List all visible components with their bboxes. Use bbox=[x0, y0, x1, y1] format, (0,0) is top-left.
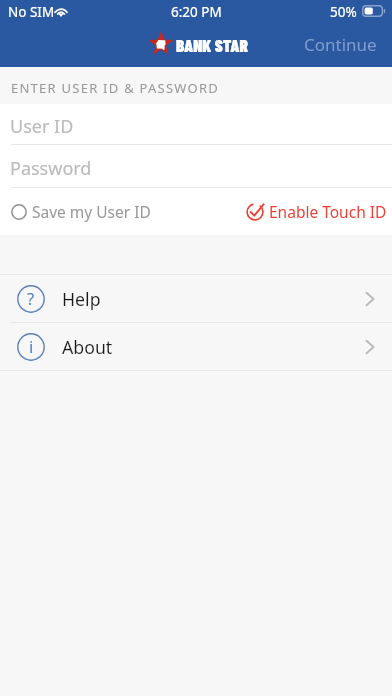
button[interactable]: Enable Touch ID bbox=[236, 193, 392, 230]
other: Open Help bbox=[365, 292, 375, 306]
button[interactable]: i bbox=[0, 323, 392, 370]
button[interactable]: Password bbox=[0, 145, 392, 187]
button[interactable]: User ID bbox=[0, 104, 392, 144]
other: Open About bbox=[365, 340, 375, 354]
staticText: Continue bbox=[304, 33, 377, 56]
staticText: BANK STAR bbox=[176, 35, 248, 56]
staticText: Help bbox=[62, 287, 101, 311]
staticText: i bbox=[29, 335, 34, 357]
staticText: User ID bbox=[10, 114, 74, 139]
staticText: Save my User ID bbox=[32, 201, 151, 222]
staticText: Password bbox=[10, 156, 92, 181]
button[interactable]: ? bbox=[0, 275, 392, 322]
button[interactable]: Save my User ID bbox=[0, 193, 161, 230]
staticText: 50% bbox=[330, 3, 357, 21]
staticText: Enable Touch ID bbox=[269, 201, 387, 222]
staticText: No SIM bbox=[8, 3, 55, 21]
staticText: 6:20 PM bbox=[171, 3, 222, 21]
button[interactable]: Continue bbox=[294, 27, 387, 62]
staticText: ENTER USER ID & PASSWORD bbox=[11, 79, 220, 97]
staticText: About bbox=[62, 335, 113, 359]
staticText: ? bbox=[27, 287, 35, 309]
